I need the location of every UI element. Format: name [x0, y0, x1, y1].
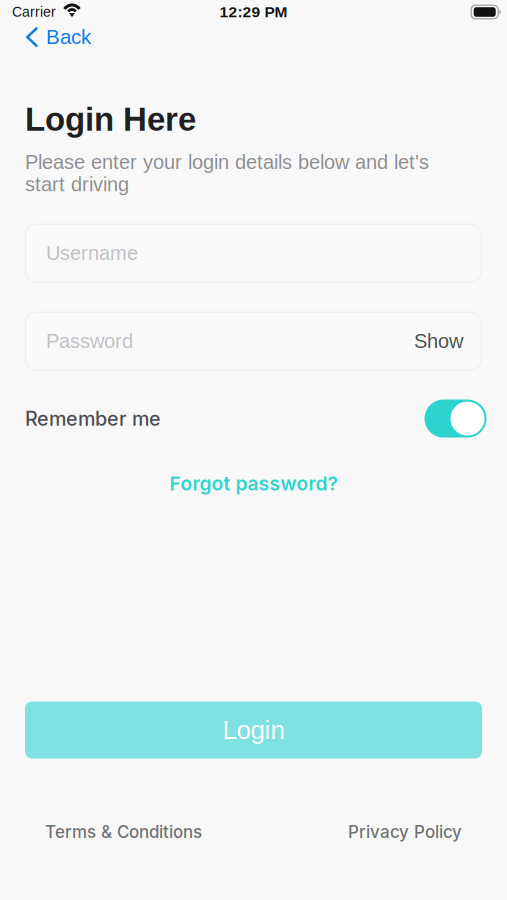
staticText: Password — [46, 330, 133, 352]
button[interactable]: Back — [0, 22, 105, 52]
staticText: Please enter your login details below an… — [25, 151, 429, 196]
button[interactable]: Show — [414, 330, 463, 352]
button[interactable]: Forgot password? — [25, 471, 482, 497]
button[interactable]: Privacy Policy — [328, 811, 482, 852]
staticText: Login — [222, 715, 284, 744]
staticText: Show — [414, 330, 463, 352]
staticText: Username — [46, 242, 138, 264]
button[interactable]: Login — [25, 701, 482, 758]
button[interactable]: Remember me — [424, 400, 486, 438]
button[interactable]: Terms & Conditions — [25, 811, 222, 852]
staticText: Forgot password? — [169, 472, 337, 495]
staticText: Carrier — [12, 4, 56, 20]
staticText: Login Here — [25, 101, 196, 138]
staticText: Terms & Conditions — [45, 821, 202, 842]
staticText: 12:29 PM — [219, 3, 287, 21]
staticText: Remember me — [25, 407, 161, 430]
staticText: Privacy Policy — [348, 821, 462, 842]
staticText: Back — [46, 25, 91, 48]
